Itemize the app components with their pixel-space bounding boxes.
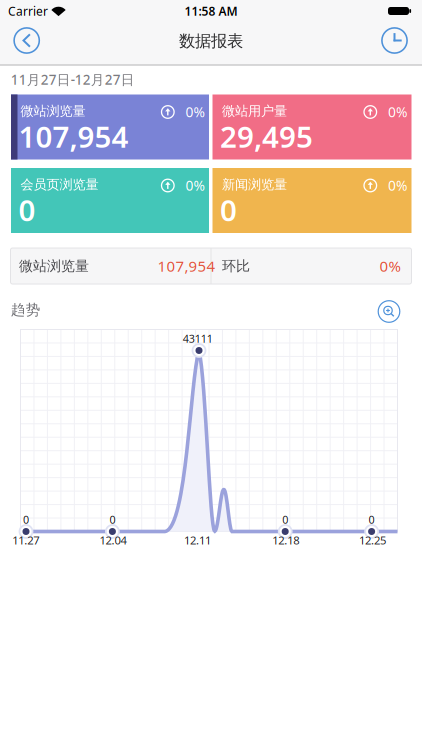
button[interactable]: 新闻浏览量 bbox=[212, 168, 411, 233]
staticText: 环比 bbox=[222, 257, 250, 275]
staticText: 29,495 bbox=[220, 116, 313, 156]
staticText: 107,954 bbox=[18, 116, 128, 156]
staticText: 0% bbox=[185, 103, 204, 121]
button[interactable]: 会员页浏览量 bbox=[11, 168, 209, 233]
button[interactable]: Back bbox=[5, 18, 49, 62]
staticText: 43111 bbox=[183, 331, 213, 346]
staticText: 微站浏览量 bbox=[20, 103, 85, 119]
staticText: 12.18 bbox=[272, 532, 299, 548]
button[interactable]: 微站用户量 bbox=[212, 94, 411, 159]
staticText: 数据报表 bbox=[179, 31, 243, 51]
button[interactable]: Zoom chart bbox=[374, 296, 404, 326]
staticText: 11:58 AM bbox=[184, 3, 237, 19]
staticText: 0 bbox=[220, 190, 237, 230]
staticText: 0 bbox=[369, 512, 375, 527]
staticText: 0% bbox=[379, 256, 400, 276]
staticText: Carrier bbox=[8, 3, 48, 19]
staticText: 新闻浏览量 bbox=[222, 176, 287, 193]
staticText: 趋势 bbox=[11, 301, 41, 319]
staticText: 0% bbox=[388, 176, 407, 195]
staticText: 0 bbox=[18, 190, 35, 230]
button[interactable]: History bbox=[372, 18, 416, 62]
staticText: 微站浏览量 bbox=[19, 257, 89, 275]
staticText: 107,954 bbox=[157, 256, 215, 276]
staticText: 0% bbox=[185, 176, 204, 195]
staticText: 11月27日-12月27日 bbox=[11, 70, 135, 89]
staticText: 0% bbox=[388, 103, 407, 121]
staticText: 11.27 bbox=[12, 532, 39, 548]
staticText: 12.11 bbox=[184, 532, 211, 548]
staticText: 12.25 bbox=[359, 532, 386, 548]
button[interactable]: 微站浏览量 bbox=[11, 94, 209, 159]
staticText: 微站用户量 bbox=[222, 103, 287, 119]
staticText: 0 bbox=[23, 512, 29, 527]
staticText: 0 bbox=[282, 512, 288, 527]
staticText: 12.04 bbox=[99, 532, 126, 548]
staticText: 会员页浏览量 bbox=[20, 176, 98, 193]
staticText: 0 bbox=[109, 512, 115, 527]
